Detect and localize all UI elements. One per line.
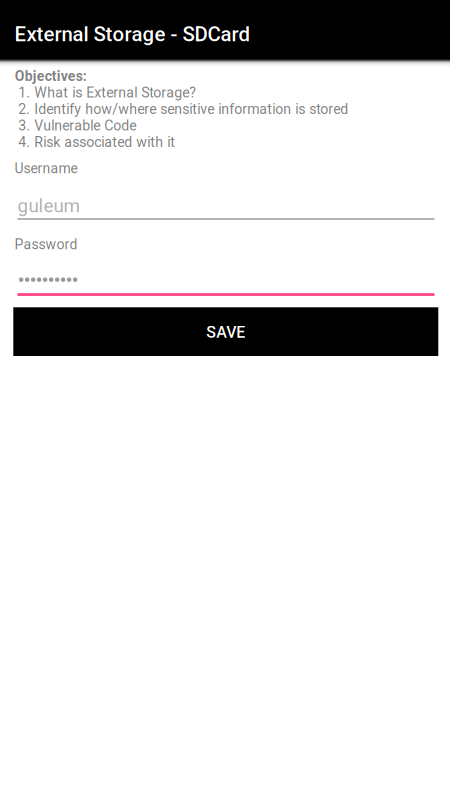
staticText: External Storage - SDCard bbox=[15, 22, 250, 46]
staticText: SAVE bbox=[206, 323, 245, 342]
staticText: guleum bbox=[18, 195, 80, 217]
button[interactable]: SAVE bbox=[13, 307, 438, 356]
staticText: Username bbox=[14, 160, 77, 177]
staticText: Objectives: bbox=[15, 68, 87, 84]
staticText: 3. Vulnerable Code bbox=[18, 117, 136, 134]
staticText: 1. What is External Storage? bbox=[18, 84, 196, 101]
staticText: 4. Risk associated with it bbox=[18, 134, 175, 151]
staticText: Password bbox=[14, 236, 77, 253]
staticText: 2. Identify how/where sensitive informat… bbox=[18, 101, 348, 118]
button[interactable]: Password bbox=[0, 236, 450, 296]
button[interactable]: Username bbox=[0, 160, 450, 220]
